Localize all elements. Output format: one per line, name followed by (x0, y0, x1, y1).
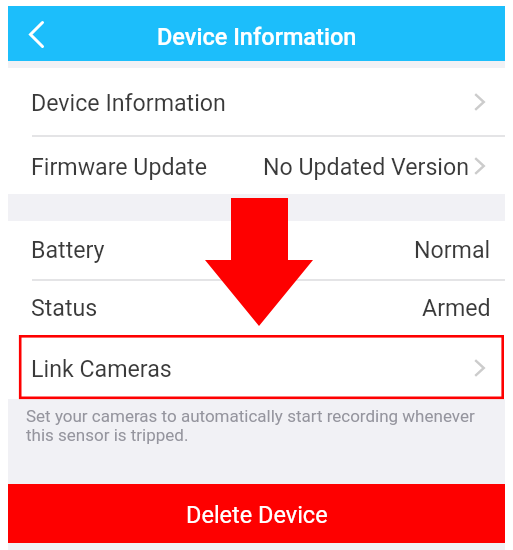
staticText: Device Information (31, 89, 226, 116)
staticText: Armed (422, 294, 491, 321)
staticText: No Updated Version (263, 153, 470, 180)
button[interactable]: Status (8, 281, 505, 335)
staticText: Firmware Update (31, 153, 208, 180)
button[interactable]: Back (14, 12, 58, 56)
button[interactable]: Link Cameras (8, 335, 505, 399)
staticText: Delete Device (186, 501, 328, 529)
button[interactable]: Device Information (8, 68, 505, 135)
button[interactable]: Delete Device (8, 484, 505, 543)
staticText: Status (31, 294, 98, 321)
button[interactable]: Battery (8, 221, 505, 279)
staticText: Device Information (157, 23, 357, 51)
staticText: Link Cameras (31, 355, 172, 382)
staticText: Set your cameras to automatically start … (26, 406, 475, 445)
staticText: Normal (414, 236, 491, 263)
staticText: Battery (31, 236, 105, 263)
button[interactable]: Firmware Update (8, 137, 505, 194)
